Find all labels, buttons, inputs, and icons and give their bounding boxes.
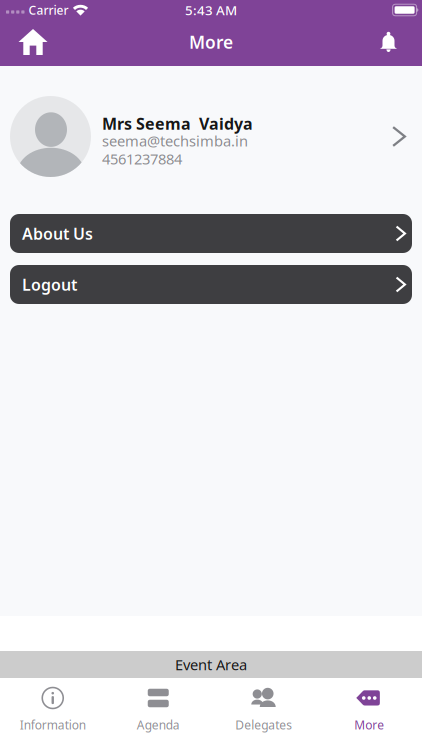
staticText: Delegates xyxy=(235,717,292,733)
staticText: Information xyxy=(20,717,86,733)
button[interactable]: More xyxy=(316,687,422,750)
button[interactable]: Home xyxy=(0,20,66,64)
staticText: Event Area xyxy=(175,655,247,674)
button[interactable]: Mrs Seema Vaidya xyxy=(10,96,412,177)
button[interactable]: About Us xyxy=(10,214,412,253)
staticText: Carrier xyxy=(28,2,68,18)
staticText: Mrs Seema Vaidya xyxy=(102,113,253,134)
staticText: More xyxy=(354,717,384,733)
button[interactable]: Information xyxy=(0,687,105,750)
staticText: seema@techsimba.in xyxy=(102,131,248,150)
staticText: Logout xyxy=(22,274,77,295)
staticText: More xyxy=(189,30,233,53)
button[interactable]: Delegates xyxy=(211,687,316,750)
staticText: 4561237884 xyxy=(102,149,182,168)
staticText: 5:43 AM xyxy=(185,1,237,19)
staticText: Agenda xyxy=(137,717,180,733)
button[interactable]: Logout xyxy=(10,265,412,304)
staticText: About Us xyxy=(22,223,93,244)
button[interactable]: Agenda xyxy=(105,687,211,750)
button[interactable]: Notifications xyxy=(355,20,422,64)
